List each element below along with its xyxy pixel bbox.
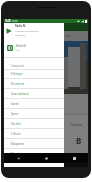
staticText: Sport [11, 112, 19, 116]
staticText: Live [16, 49, 21, 52]
staticText: Radio M [16, 44, 26, 48]
button[interactable]: Recents [60, 153, 88, 163]
button[interactable]: Home [32, 153, 60, 163]
button[interactable]: Monde [4, 149, 64, 159]
staticText: Culture [11, 132, 21, 136]
button[interactable]: Santé [4, 99, 64, 109]
staticText: Economie [11, 82, 25, 86]
staticText: Voir plus [70, 123, 83, 127]
button[interactable]: Culture [4, 129, 64, 139]
staticText: Santé [11, 102, 19, 106]
staticText: Société [11, 122, 21, 126]
staticText: Première quotidienne [15, 30, 39, 33]
staticText: Magazine [11, 142, 25, 146]
staticText: Radio M [15, 24, 26, 28]
button[interactable]: International [4, 89, 64, 99]
staticText: Voir plus [59, 34, 72, 38]
staticText: 9:48 [5, 19, 11, 23]
staticText: Monde [11, 152, 21, 156]
button[interactable]: Radio M [4, 42, 64, 54]
button[interactable]: Economie [4, 79, 64, 89]
staticText: International [11, 92, 29, 96]
staticText: Politique [11, 72, 23, 76]
button[interactable]: Radio M [4, 23, 64, 39]
staticText: magazine [15, 34, 26, 37]
staticText: Categories [11, 64, 25, 68]
button[interactable]: Société [4, 119, 64, 129]
button[interactable]: Back [4, 153, 32, 163]
button[interactable]: Sport [4, 109, 64, 119]
button[interactable]: Politique [4, 69, 64, 79]
staticText: B [76, 135, 82, 146]
button[interactable]: Magazine [4, 139, 64, 149]
